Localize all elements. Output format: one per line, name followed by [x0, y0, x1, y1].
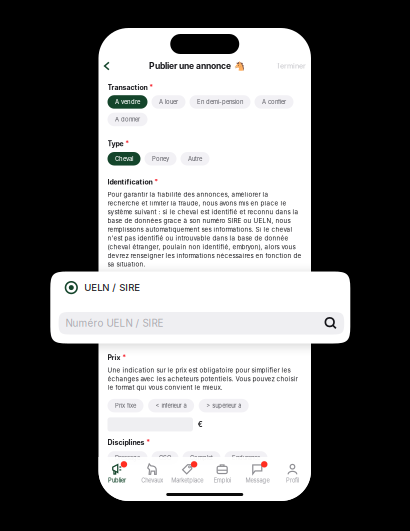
staticText: < inférieur à [156, 402, 187, 409]
staticText: UELN / SIRE [84, 282, 140, 293]
staticText: * [122, 353, 126, 362]
button[interactable]: Endurance [224, 451, 267, 465]
button[interactable]: CSO [151, 451, 178, 465]
button[interactable]: Emploi [205, 458, 240, 487]
button[interactable]: En demi-pension [189, 95, 250, 109]
staticText: € [198, 420, 203, 429]
button[interactable]: A confier [254, 95, 293, 109]
staticText: Profil [286, 477, 299, 484]
button[interactable]: Poney [144, 152, 176, 165]
button[interactable]: A vendre [107, 95, 147, 109]
button[interactable]: Chevaux [135, 458, 170, 487]
staticText: Pour garantir la fiabilité des annonces,… [107, 191, 301, 268]
button[interactable]: Search [323, 316, 338, 331]
staticText: * [146, 438, 150, 447]
staticText: Prix fixe [115, 402, 136, 409]
staticText: Marketplace [171, 477, 203, 484]
staticText: Endurance [232, 454, 260, 461]
staticText: Emploi [214, 477, 231, 484]
button[interactable]: Back [103, 59, 117, 73]
staticText: CSO [159, 454, 171, 461]
button[interactable]: A louer [151, 95, 185, 109]
staticText: Chevaux [141, 477, 163, 484]
staticText: Poney [152, 155, 169, 162]
staticText: Prix [107, 353, 120, 362]
staticText: > supérieur à [206, 402, 241, 409]
staticText: Disciplines [107, 438, 144, 447]
button[interactable]: Marketplace [170, 458, 205, 487]
staticText: * [125, 139, 129, 148]
button[interactable]: < inférieur à [148, 399, 194, 412]
button[interactable]: Profil [275, 458, 310, 487]
staticText: * [154, 178, 158, 186]
button[interactable]: > supérieur à [199, 399, 249, 412]
button[interactable]: Message [240, 458, 275, 487]
staticText: Dressage [115, 454, 140, 461]
button[interactable]: Complet [182, 451, 220, 465]
button[interactable]: Cheval [107, 152, 140, 165]
staticText: En demi-pension [197, 98, 243, 105]
staticText: Identification [107, 178, 152, 186]
staticText: Publier [108, 477, 126, 484]
button[interactable]: UELN / SIRE [50, 271, 350, 312]
staticText: * [149, 83, 153, 92]
staticText: Publier une annonce [149, 61, 231, 71]
staticText: A vendre [115, 98, 140, 105]
button[interactable]: A donner [107, 113, 147, 126]
staticText: Cheval [115, 155, 133, 162]
button[interactable]: Terminer [276, 62, 306, 70]
staticText: Message [245, 477, 269, 484]
staticText: A louer [159, 98, 178, 105]
staticText: A confier [262, 98, 286, 105]
staticText: Une indication sur le prix est obligatoi… [107, 366, 297, 391]
button[interactable]: Autre [180, 152, 209, 165]
button[interactable]: Publier [99, 458, 135, 487]
staticText: Autre [188, 155, 202, 162]
button[interactable]: Dressage [107, 451, 147, 465]
staticText: 🐴 [233, 61, 244, 71]
staticText: Terminer [276, 62, 306, 70]
staticText: A donner [115, 116, 140, 123]
button[interactable]: Prix fixe [107, 399, 143, 412]
staticText: Type [107, 139, 123, 148]
staticText: Complet [190, 454, 213, 461]
staticText: Numéro UELN / SIRE [66, 317, 164, 329]
staticText: Transaction [107, 83, 147, 92]
